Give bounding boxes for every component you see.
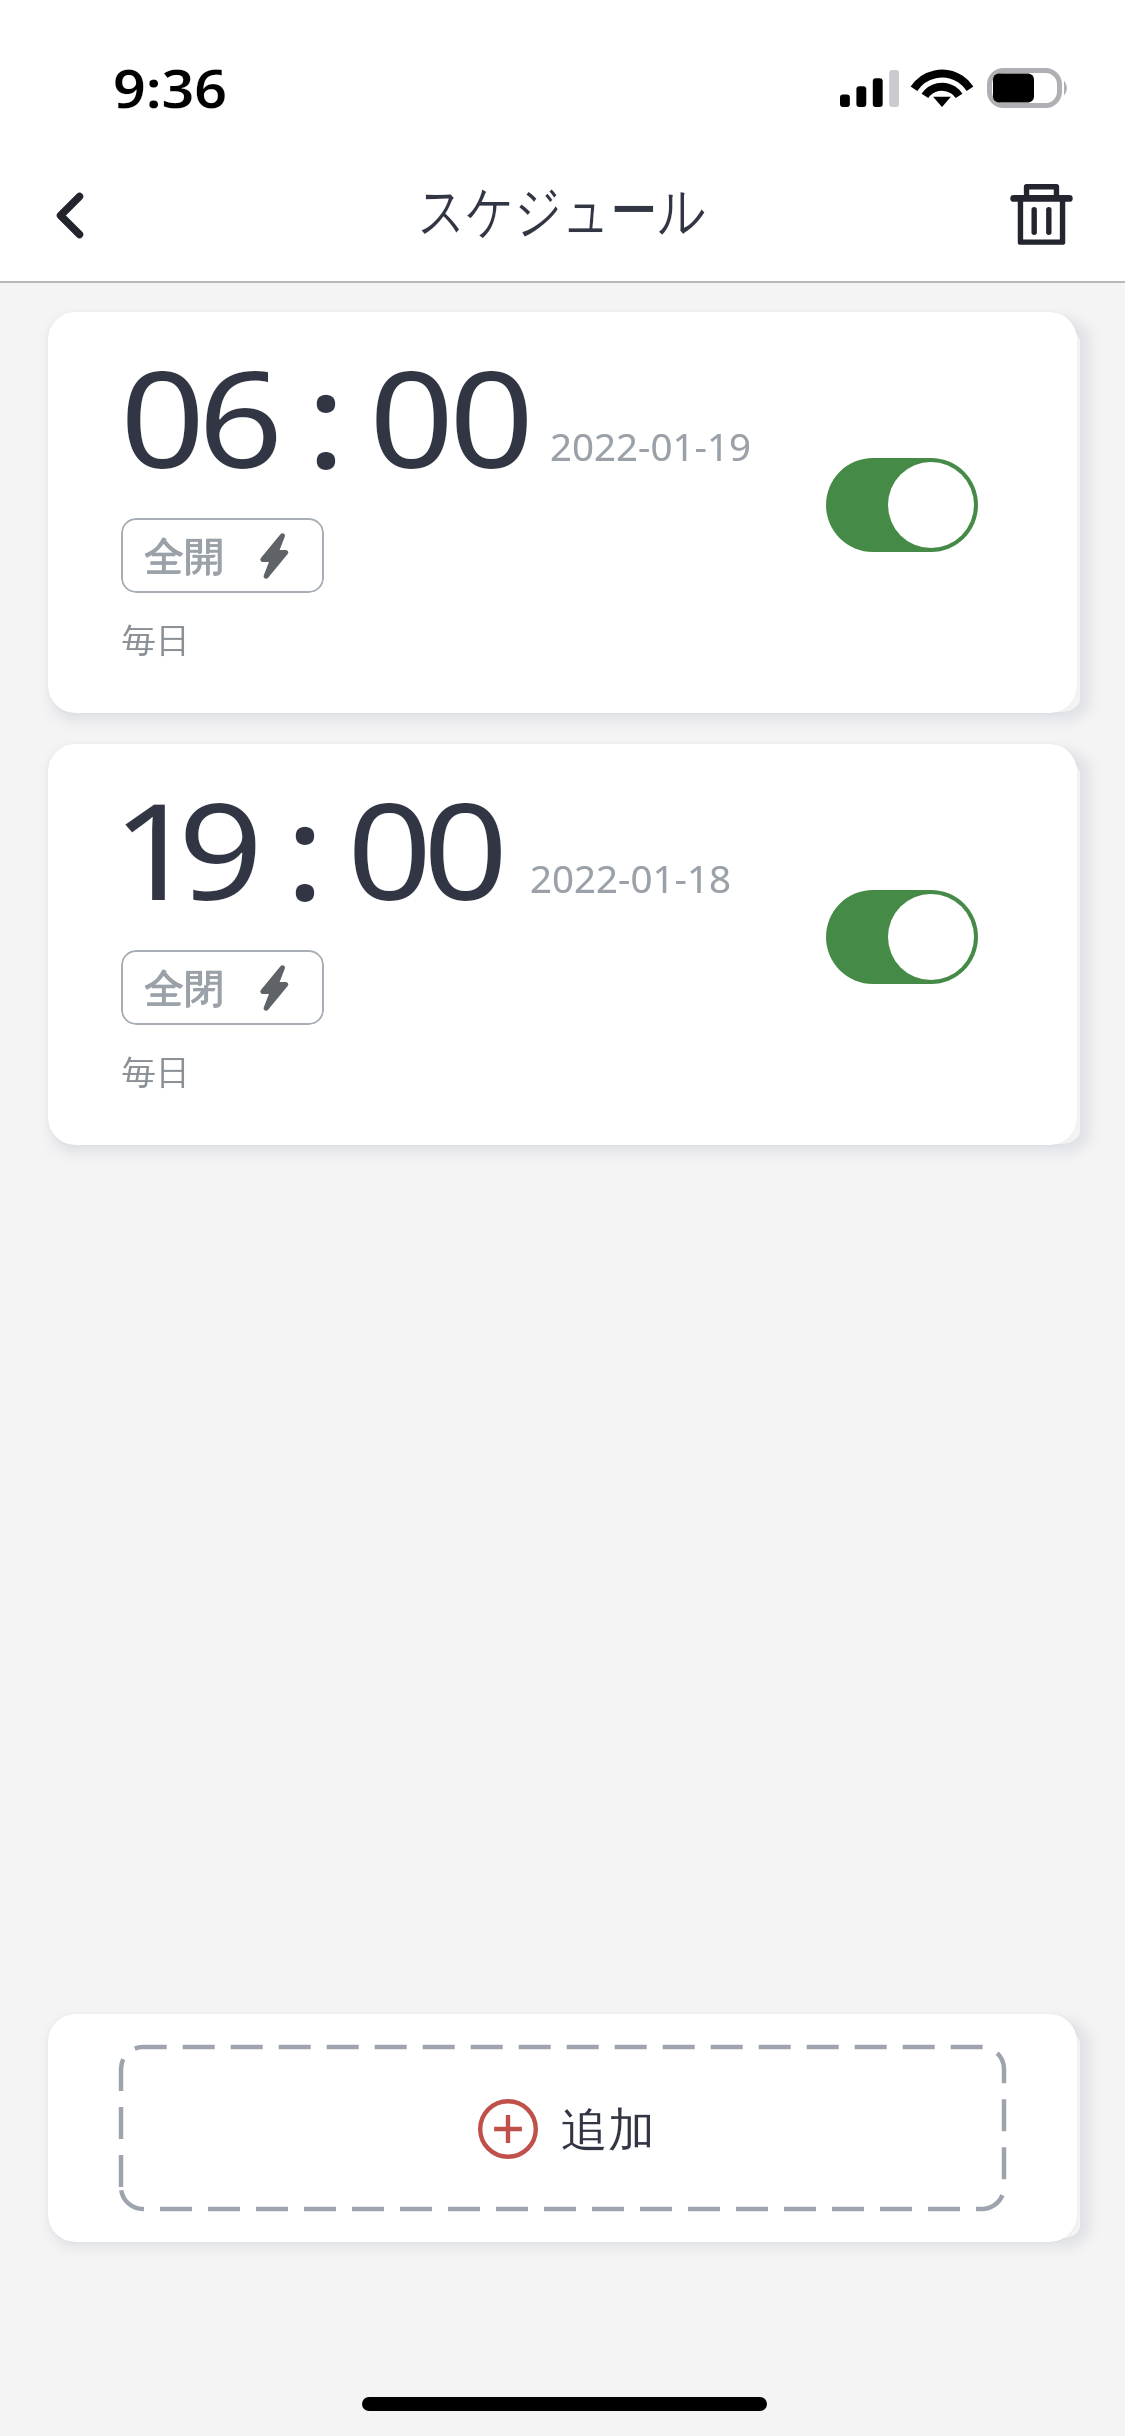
staticText: 全開: [144, 532, 222, 582]
button[interactable]: 0: [48, 312, 1077, 713]
staticText: :: [306, 326, 346, 496]
staticText: 2022-01-18: [530, 852, 731, 904]
button[interactable]: 全開: [121, 518, 324, 593]
staticText: 0: [423, 758, 509, 928]
staticText: 9: [178, 758, 264, 928]
staticText: 毎日: [122, 1051, 190, 1094]
button[interactable]: Back: [20, 165, 120, 265]
button[interactable]: Enabled: [826, 890, 978, 984]
staticText: 追加: [561, 2101, 655, 2160]
staticText: 0: [347, 758, 433, 928]
staticText: 0: [369, 326, 455, 496]
button[interactable]: Delete: [992, 166, 1091, 265]
staticText: 全閉: [144, 964, 222, 1014]
staticText: 0: [449, 326, 535, 496]
staticText: 全開: [145, 531, 223, 581]
staticText: 1: [112, 758, 198, 928]
staticText: 0: [120, 326, 206, 496]
button[interactable]: Enabled: [826, 458, 978, 552]
staticText: 全閉: [145, 963, 223, 1013]
staticText: スケジュール: [418, 175, 705, 248]
staticText: 9:36: [113, 51, 227, 123]
staticText: 毎日: [122, 619, 190, 662]
staticText: 全開: [144, 531, 222, 581]
button[interactable]: 全閉: [121, 950, 324, 1025]
staticText: 全閉: [144, 963, 222, 1013]
staticText: 2022-01-19: [550, 420, 751, 472]
staticText: :: [285, 758, 325, 928]
staticText: 6: [198, 326, 284, 496]
button[interactable]: 追加: [48, 2014, 1077, 2242]
button[interactable]: 1: [48, 744, 1077, 1145]
